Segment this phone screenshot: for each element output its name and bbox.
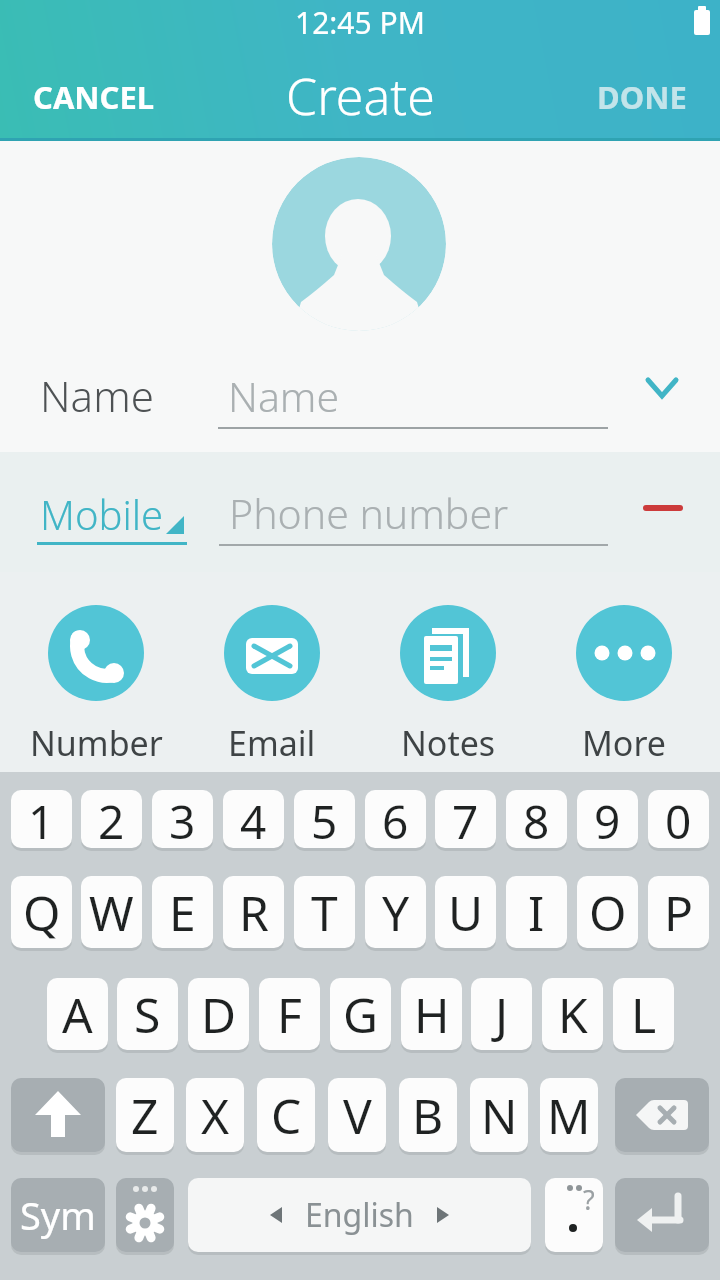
staticText: CANCEL [33,76,155,118]
staticText: DONE [597,76,687,118]
button[interactable] [633,495,693,521]
button[interactable]: Mobile [36,480,188,546]
button[interactable]: Y [365,876,426,948]
staticText: 5 [311,790,338,848]
button[interactable]: L [613,978,674,1050]
staticText: Sym [20,1189,96,1241]
staticText: Z [131,1083,159,1148]
button[interactable]: CANCEL [33,76,155,118]
staticText: Name [40,367,154,424]
staticText: 12:45 PM [295,2,425,43]
staticText: Y [382,880,410,945]
button[interactable] [272,157,446,331]
button[interactable]: V [328,1078,386,1152]
staticText: 6 [382,790,409,848]
button[interactable]: 3 [152,790,213,848]
button[interactable]: O [577,876,638,948]
staticText: English [305,1193,414,1237]
button[interactable]: Phone number [219,472,609,546]
staticText: N [481,1083,518,1148]
staticText: Number [30,720,163,764]
button[interactable] [400,605,496,701]
button[interactable]: K [542,978,603,1050]
button[interactable]: 6 [365,790,426,848]
button[interactable]: F [259,978,320,1050]
button[interactable]: M [540,1078,598,1152]
button[interactable]: X [186,1078,244,1152]
button[interactable]: 4 [223,790,284,848]
button[interactable]: S [117,978,178,1050]
staticText: Email [228,720,316,764]
staticText: 2 [98,790,125,848]
button[interactable]: 8 [506,790,567,848]
button[interactable] [615,1078,709,1152]
button[interactable]: H [401,978,462,1050]
button[interactable]: 2 [81,790,142,848]
staticText: W [89,880,134,945]
button[interactable]: 9 [577,790,638,848]
staticText: I [528,880,545,945]
staticText: 1 [28,790,55,848]
button[interactable]: C [257,1078,315,1152]
button[interactable]: G [330,978,391,1050]
button[interactable]: 1 [11,790,72,848]
staticText: Notes [401,720,496,764]
staticText: B [412,1083,444,1148]
button[interactable]: DONE [597,76,687,118]
button[interactable]: D [188,978,249,1050]
button[interactable] [116,1178,174,1252]
button[interactable] [224,605,320,701]
button[interactable]: J [471,978,532,1050]
button[interactable]: Q [11,876,72,948]
staticText: P [664,880,694,945]
button[interactable] [615,1178,709,1252]
staticText: S [134,982,161,1047]
button[interactable] [11,1078,105,1152]
staticText: Mobile [40,487,164,541]
staticText: X [201,1083,230,1148]
staticText: U [448,880,484,945]
button[interactable]: T [294,876,355,948]
staticText: 9 [594,790,621,848]
staticText: M [547,1083,591,1148]
staticText: ? [583,1181,595,1218]
staticText: Phone number [229,485,509,541]
button[interactable] [638,368,686,408]
button[interactable]: Sym [11,1178,105,1252]
staticText: G [343,982,378,1047]
button[interactable]: N [470,1078,528,1152]
button[interactable] [48,605,144,701]
button[interactable]: English [188,1178,531,1252]
staticText: 8 [523,790,550,848]
button[interactable]: ? [545,1178,603,1252]
button[interactable]: E [152,876,213,948]
staticText: T [311,880,338,945]
button[interactable]: Name [218,355,608,429]
button[interactable]: 7 [435,790,496,848]
button[interactable]: A [47,978,108,1050]
button[interactable]: W [81,876,142,948]
button[interactable]: U [435,876,496,948]
staticText: V [343,1083,372,1148]
staticText: R [239,880,269,945]
button[interactable]: Z [116,1078,174,1152]
staticText: J [495,982,509,1047]
staticText: A [62,982,93,1047]
button[interactable]: 5 [294,790,355,848]
staticText: More [582,720,666,764]
button[interactable]: 0 [648,790,709,848]
staticText: 3 [169,790,196,848]
staticText: Create [286,62,435,130]
staticText: 7 [452,790,479,848]
button[interactable]: B [399,1078,457,1152]
button[interactable] [576,605,672,701]
staticText: K [558,982,588,1047]
staticText: Name [228,368,340,424]
button[interactable]: R [223,876,284,948]
staticText: Q [23,880,61,945]
button[interactable]: P [648,876,709,948]
button[interactable]: I [506,876,567,948]
staticText: H [414,982,450,1047]
staticText: O [589,880,627,945]
staticText: F [277,982,302,1047]
